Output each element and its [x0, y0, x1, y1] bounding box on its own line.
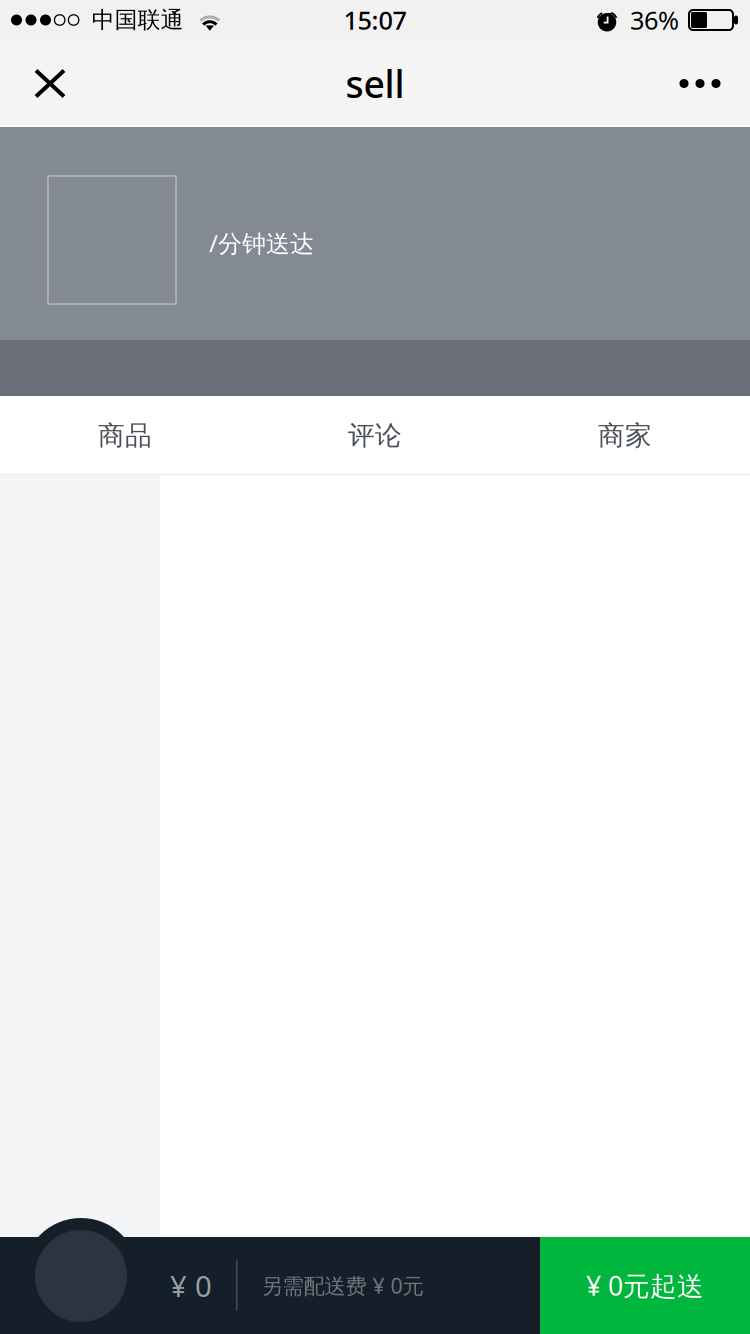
button[interactable]: 商品: [0, 396, 250, 475]
staticText: ¥ 0: [170, 1266, 212, 1305]
staticText: 36%: [630, 3, 679, 37]
button[interactable]: 商家: [500, 396, 750, 475]
staticText: sell: [345, 59, 404, 108]
button[interactable]: 评论: [250, 396, 500, 475]
button[interactable]: Close: [14, 40, 86, 126]
staticText: /分钟送达: [209, 227, 314, 259]
staticText: 中国联通: [92, 6, 184, 34]
button[interactable]: More: [664, 40, 736, 126]
staticText: 15:07: [343, 3, 406, 37]
staticText: 另需配送费 ¥ 0元: [261, 1271, 423, 1300]
staticText: 评论: [348, 419, 402, 452]
button[interactable]: ¥ 0元起送: [540, 1237, 750, 1334]
staticText: 商家: [598, 419, 652, 452]
staticText: ¥ 0元起送: [586, 1268, 704, 1303]
staticText: 商品: [98, 419, 152, 452]
button[interactable]: Cart: [23, 1218, 139, 1334]
